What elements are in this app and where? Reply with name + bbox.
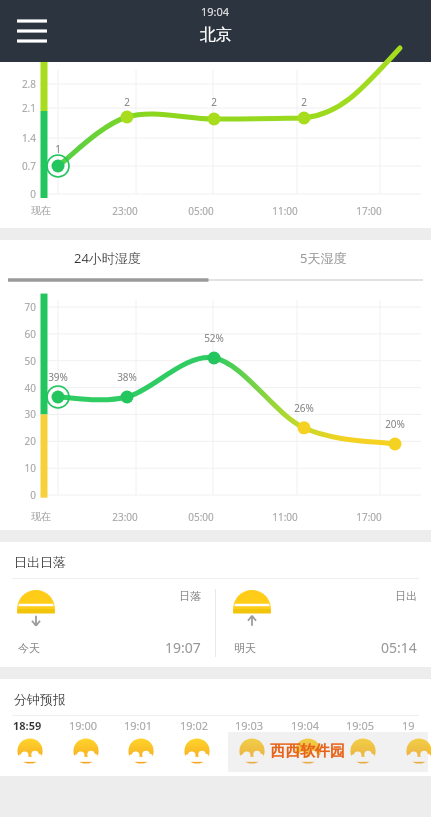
staticText: 现在 [31,204,51,217]
staticText: 19:01 [124,718,153,733]
staticText: 19:03 [235,718,264,733]
staticText: 18:59 [13,718,42,733]
staticText: 19:04 [291,718,320,733]
staticText: 2.1 [8,101,36,115]
staticText: 60 [6,327,36,341]
staticText: 0.7 [8,159,36,173]
staticText: 1.4 [8,131,36,145]
staticText: 2 [204,95,224,109]
staticText: 19 [402,718,415,733]
button[interactable]: 5天湿度 [215,240,431,282]
staticText: 19:07 [165,638,201,657]
staticText: 40 [6,381,36,395]
staticText: 1 [48,142,68,156]
staticText: 西西软件园 [270,742,345,761]
staticText: 5天湿度 [300,249,347,267]
staticText: 11:00 [272,510,298,524]
staticText: 今天 [18,641,40,655]
staticText: 30 [6,407,36,421]
button[interactable]: 24小时湿度 [0,240,215,282]
staticText: 11:00 [272,204,298,218]
staticText: 19:05 [346,718,375,733]
staticText: 日出日落 [14,554,66,570]
staticText: 05:14 [381,638,417,657]
staticText: 23:00 [112,204,138,218]
staticText: 52% [197,331,231,345]
button[interactable]: Menu [10,9,54,53]
staticText: 17:00 [356,510,382,524]
staticText: 10 [6,461,36,475]
staticText: 分钟预报 [14,691,66,707]
staticText: 23:00 [112,510,138,524]
staticText: 2 [294,95,314,109]
staticText: 2 [117,95,137,109]
staticText: 24小时湿度 [74,249,141,267]
staticText: 0 [8,187,36,201]
staticText: 现在 [31,510,51,523]
staticText: 39% [41,370,75,384]
staticText: 20% [378,417,412,431]
staticText: 26% [287,401,321,415]
staticText: 50 [6,354,36,368]
staticText: 日落 [179,589,201,603]
staticText: 20 [6,434,36,448]
staticText: 70 [6,300,36,314]
staticText: 19:00 [69,718,98,733]
staticText: 05:00 [188,204,214,218]
button[interactable]: 日出 [216,579,431,667]
staticText: 05:00 [188,510,214,524]
staticText: 19:04 [201,4,230,19]
staticText: 明天 [234,641,256,655]
staticText: 日出 [395,589,417,603]
staticText: 2.8 [8,77,36,91]
staticText: 17:00 [356,204,382,218]
staticText: 北京 [200,25,232,45]
button[interactable]: 日落 [0,579,215,667]
staticText: 38% [110,370,144,384]
staticText: 0 [6,488,36,502]
staticText: 19:02 [180,718,209,733]
